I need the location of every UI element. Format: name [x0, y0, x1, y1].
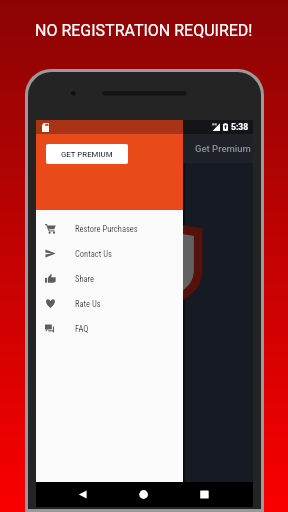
staticText: Restore Purchases	[75, 224, 138, 234]
staticText: Share	[75, 274, 95, 284]
staticText: FAQ	[75, 324, 89, 334]
button[interactable]: FAQ	[36, 316, 183, 341]
button[interactable]: Share	[36, 266, 183, 291]
button[interactable]: Rate Us	[36, 291, 183, 316]
staticText: GET PREMIUM	[61, 150, 113, 159]
staticText: Get Premium	[195, 143, 251, 154]
staticText: 5:38	[231, 122, 249, 132]
staticText: Contact Us	[75, 249, 112, 259]
staticText: Rate Us	[75, 299, 101, 309]
button[interactable]: Restore Purchases	[36, 216, 183, 241]
button[interactable]: GET PREMIUM	[46, 144, 128, 164]
staticText: NO REGISTRATION REQUIRED!	[35, 21, 253, 40]
button[interactable]: Contact Us	[36, 241, 183, 266]
